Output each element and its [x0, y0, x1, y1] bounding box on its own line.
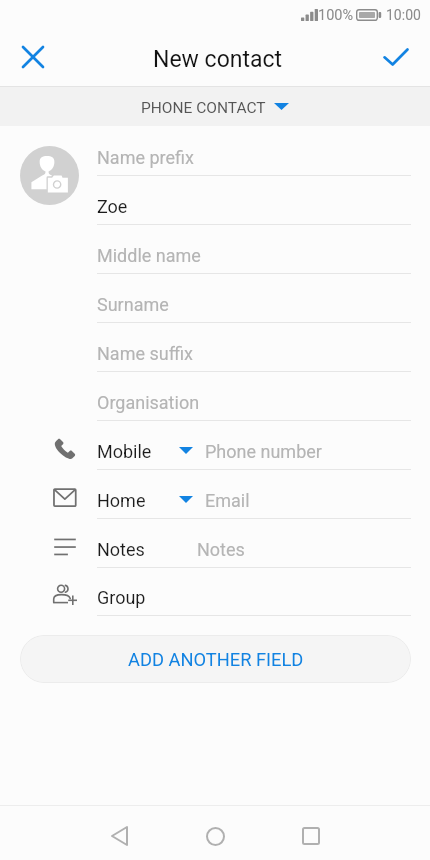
staticText: Name prefix	[97, 147, 194, 168]
button[interactable]: Name suffix	[97, 322, 411, 371]
staticText: Mobile	[97, 441, 152, 462]
staticText: 100%	[318, 7, 354, 24]
staticText: Notes	[197, 539, 245, 560]
button[interactable]: Middle name	[97, 224, 411, 273]
button[interactable]: Group	[0, 566, 430, 615]
button[interactable]: Organisation	[97, 371, 411, 420]
button[interactable]: Name prefix	[97, 126, 411, 175]
staticText: PHONE CONTACT	[141, 99, 266, 117]
button[interactable]: PHONE CONTACT	[0, 86, 430, 126]
button[interactable]: ADD ANOTHER FIELD	[20, 635, 411, 683]
button[interactable]: Add photo	[20, 146, 79, 205]
button[interactable]: Back	[95, 812, 143, 860]
staticText: Group	[97, 587, 146, 608]
button[interactable]: Mobile	[0, 420, 430, 469]
staticText: Home	[97, 490, 146, 511]
staticText: Middle name	[97, 245, 201, 266]
button[interactable]: Zoe	[97, 175, 411, 224]
button[interactable]: Notes	[0, 518, 430, 567]
button[interactable]: Surname	[97, 273, 411, 322]
button[interactable]: Close	[13, 37, 53, 77]
staticText: Phone number	[205, 441, 322, 462]
staticText: 10:00	[386, 7, 421, 23]
staticText: Notes	[97, 539, 145, 560]
button[interactable]: Save	[376, 37, 416, 77]
button[interactable]: Home	[0, 469, 430, 518]
staticText: Surname	[97, 294, 169, 315]
staticText: Email	[205, 490, 250, 511]
staticText: Name suffix	[97, 343, 193, 364]
staticText: ADD ANOTHER FIELD	[128, 649, 304, 670]
button[interactable]: Home	[191, 812, 239, 860]
button[interactable]: Recents	[287, 812, 335, 860]
staticText: Zoe	[97, 196, 128, 217]
staticText: Organisation	[97, 392, 200, 413]
staticText: New contact	[153, 46, 283, 73]
